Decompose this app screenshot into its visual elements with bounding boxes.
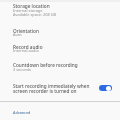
staticText: Record audio bbox=[13, 44, 43, 50]
staticText: Orientation bbox=[13, 28, 39, 34]
staticText: Storage location bbox=[13, 3, 50, 9]
staticText: 3 seconds bbox=[13, 67, 32, 72]
button[interactable]: Start recording immediately when bbox=[0, 78, 120, 100]
staticText: screen recorder is turned on bbox=[13, 88, 77, 94]
button[interactable]: Orientation bbox=[0, 23, 120, 41]
button[interactable]: Storage location bbox=[0, 0, 120, 23]
staticText: Advanced bbox=[13, 110, 31, 115]
button[interactable]: Record audio bbox=[0, 41, 120, 59]
button[interactable]: Countdown before recording bbox=[0, 59, 120, 78]
staticText: Internal storage bbox=[13, 8, 43, 13]
staticText: Countdown before recording bbox=[13, 62, 78, 68]
staticText: Start recording immediately when bbox=[13, 83, 90, 89]
staticText: Internal audio bbox=[13, 48, 39, 53]
staticText: Auto bbox=[13, 32, 22, 37]
staticText: Available space: 208 GB bbox=[13, 12, 57, 17]
button[interactable] bbox=[99, 85, 112, 91]
button[interactable]: Advanced bbox=[0, 103, 120, 120]
